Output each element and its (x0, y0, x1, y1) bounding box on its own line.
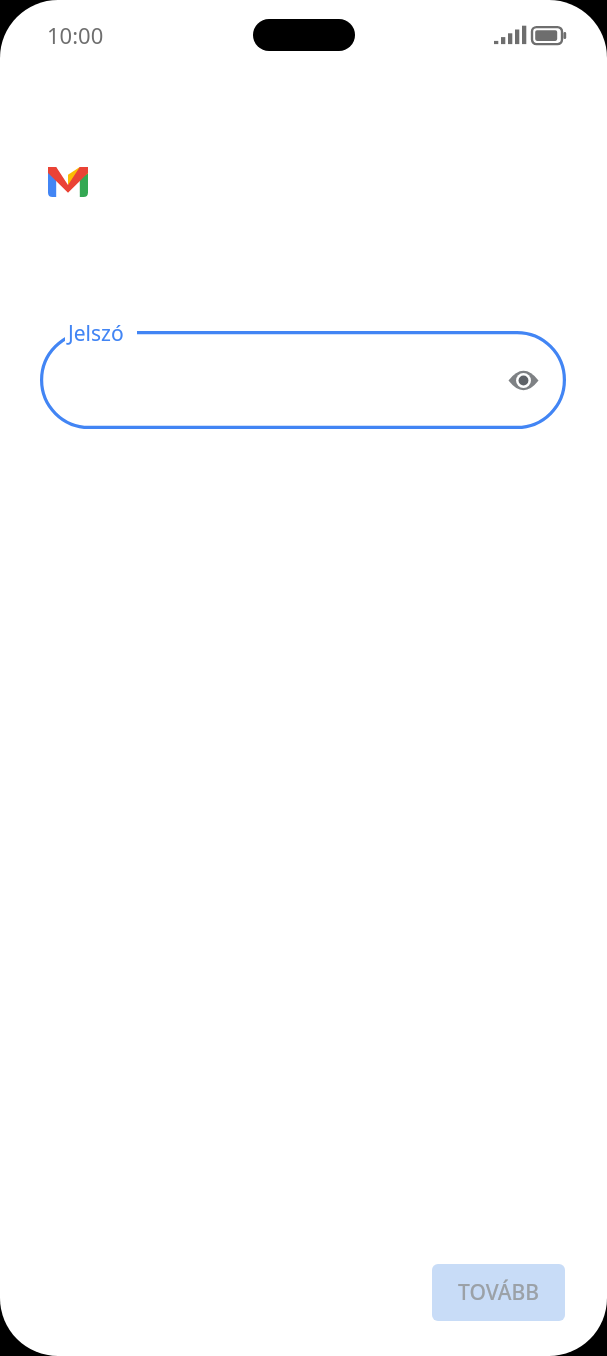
button[interactable]: Jelszó megjelenítése (496, 353, 550, 407)
staticText: 10:00 (47, 20, 104, 50)
staticText: Jelszó (68, 319, 124, 348)
staticText: TOVÁBB (458, 1278, 539, 1307)
button[interactable]: TOVÁBB (432, 1264, 565, 1321)
button[interactable]: Jelszó (40, 331, 566, 429)
